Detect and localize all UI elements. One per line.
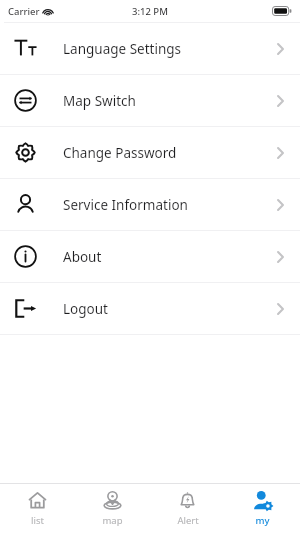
- button[interactable]: About: [0, 231, 300, 282]
- staticText: Logout: [63, 300, 108, 318]
- staticText: map: [102, 514, 123, 527]
- button[interactable]: Service Information: [0, 179, 300, 230]
- button[interactable]: map: [75, 484, 150, 533]
- staticText: Alert: [177, 514, 199, 527]
- button[interactable]: list: [0, 484, 75, 533]
- staticText: About: [63, 248, 102, 266]
- button[interactable]: Language Settings: [0, 23, 300, 74]
- staticText: Change Password: [63, 144, 177, 162]
- staticText: list: [31, 514, 44, 527]
- button[interactable]: Map Switch: [0, 75, 300, 126]
- staticText: 3:12 PM: [132, 5, 168, 18]
- button[interactable]: Alert: [150, 484, 225, 533]
- staticText: Map Switch: [63, 92, 136, 110]
- button[interactable]: Logout: [0, 283, 300, 334]
- staticText: my: [255, 514, 270, 527]
- staticText: Language Settings: [63, 40, 182, 58]
- staticText: Service Information: [63, 196, 188, 214]
- button[interactable]: Change Password: [0, 127, 300, 178]
- button[interactable]: my: [225, 484, 300, 533]
- staticText: Carrier: [8, 5, 40, 18]
